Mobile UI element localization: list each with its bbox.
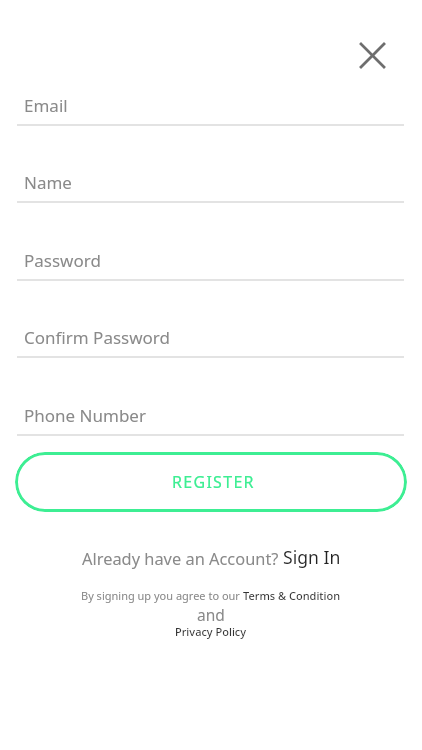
- button[interactable]: REGISTER: [15, 452, 407, 512]
- staticText: By signing up you agree to our: [81, 588, 243, 603]
- button[interactable]: Confirm Password: [17, 311, 404, 358]
- staticText: REGISTER: [172, 471, 255, 493]
- button[interactable]: Phone Number: [17, 389, 404, 436]
- staticText: Privacy Policy: [175, 624, 247, 639]
- staticText: Terms & Condition: [243, 588, 341, 603]
- button[interactable]: Terms & Condition: [243, 588, 341, 603]
- staticText: and: [0, 604, 422, 625]
- button[interactable]: Name: [17, 156, 404, 203]
- button[interactable]: Close: [350, 33, 394, 77]
- staticText: Phone Number: [24, 404, 146, 427]
- button[interactable]: Email: [17, 79, 404, 126]
- staticText: Password: [24, 249, 101, 272]
- staticText: Already have an Account?: [82, 547, 283, 569]
- staticText: Name: [24, 171, 72, 194]
- button[interactable]: Sign In: [283, 545, 341, 569]
- button[interactable]: Password: [17, 234, 404, 281]
- staticText: Email: [24, 94, 68, 117]
- staticText: Confirm Password: [24, 326, 170, 349]
- staticText: Sign In: [283, 545, 341, 569]
- button[interactable]: Privacy Policy: [175, 624, 247, 639]
